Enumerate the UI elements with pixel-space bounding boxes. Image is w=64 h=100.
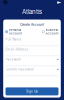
staticText: Create Account	[20, 22, 44, 26]
staticText: Account	[9, 32, 22, 35]
button[interactable]: Email Address	[5, 48, 58, 56]
staticText: Atlantis	[22, 8, 42, 15]
staticText: Personal	[9, 28, 21, 32]
staticText: Email Address	[5, 48, 28, 51]
staticText: Password	[5, 58, 20, 61]
staticText: Business	[45, 28, 57, 32]
staticText: Account	[45, 32, 58, 35]
button[interactable]: Confirm Password	[5, 68, 58, 76]
staticText: Full Name	[5, 38, 21, 41]
button[interactable]: Personal	[5, 28, 22, 35]
button[interactable]: Sign Up	[5, 87, 58, 95]
button[interactable]: Password	[5, 58, 58, 66]
button[interactable]: Full Name	[5, 38, 58, 46]
staticText: ▮▮▰	[57, 1, 61, 4]
staticText: Confirm Password	[5, 68, 33, 71]
staticText: Sign Up	[26, 89, 38, 93]
button[interactable]: Business	[42, 28, 58, 35]
